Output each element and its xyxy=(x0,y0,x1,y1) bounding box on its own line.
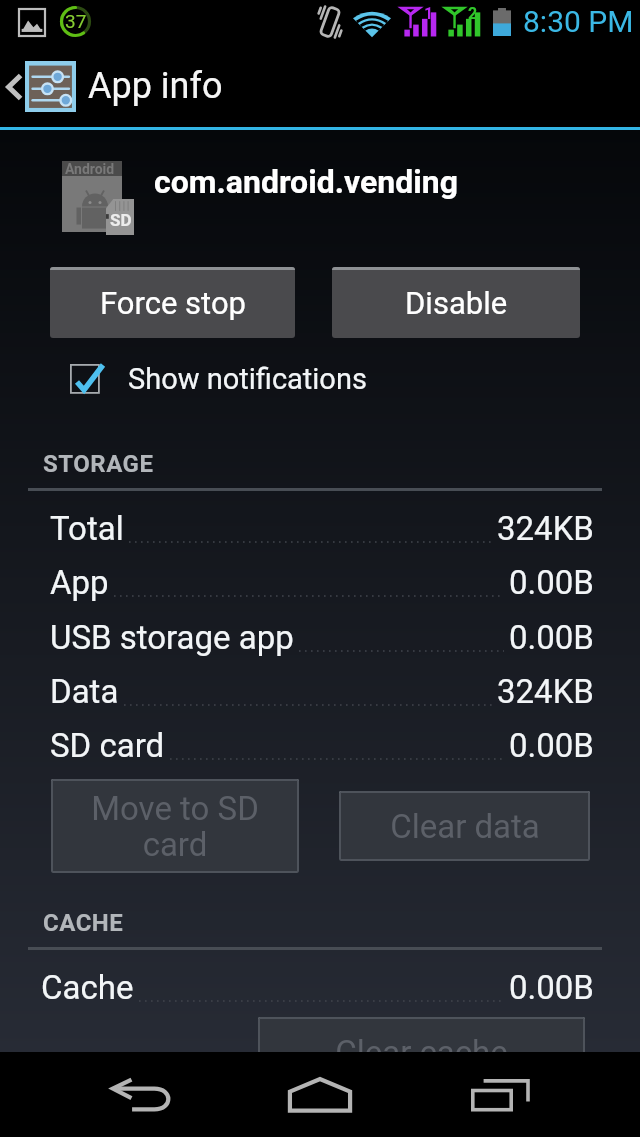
button[interactable]: Force stop xyxy=(50,267,295,338)
button[interactable]: Disable xyxy=(332,267,580,338)
button[interactable]: USB storage app xyxy=(0,610,640,664)
staticText: Show notifications xyxy=(128,362,367,396)
button[interactable]: Total xyxy=(0,501,640,555)
button[interactable]: Clear cache xyxy=(258,1017,585,1087)
staticText: 8:30 PM xyxy=(523,4,634,39)
staticText: SD xyxy=(110,210,132,230)
staticText: 0.00B xyxy=(509,726,594,765)
staticText: Android xyxy=(65,161,115,177)
staticText: CACHE xyxy=(43,909,124,937)
staticText: 0.00B xyxy=(509,618,594,657)
staticText: SD card xyxy=(50,726,165,765)
staticText: 2 xyxy=(468,4,478,23)
button[interactable]: SD card xyxy=(0,718,640,772)
staticText: Clear data xyxy=(390,807,540,846)
staticText: App xyxy=(50,563,109,602)
staticText: 0.00B xyxy=(509,563,594,602)
staticText: Move to SD card xyxy=(91,789,259,864)
staticText: 324KB xyxy=(497,509,594,548)
staticText: USB storage app xyxy=(50,618,294,657)
staticText: 0.00B xyxy=(509,968,594,1007)
button[interactable]: Clear data xyxy=(339,791,590,861)
staticText: Data xyxy=(50,672,119,711)
staticText: 1 xyxy=(424,4,434,23)
button[interactable]: Data xyxy=(0,664,640,718)
button[interactable]: Navigate up xyxy=(0,44,640,130)
staticText: App info xyxy=(88,65,223,107)
button[interactable]: Recent apps xyxy=(430,1052,570,1137)
staticText: Total xyxy=(50,509,124,548)
button[interactable]: Show notifications xyxy=(70,358,367,400)
button[interactable]: Move to SD card xyxy=(51,779,299,873)
staticText: Cache xyxy=(41,968,134,1007)
staticText: 37 xyxy=(65,10,87,32)
staticText: Clear cache xyxy=(335,1033,508,1072)
button[interactable]: Back xyxy=(70,1052,215,1137)
staticText: 324KB xyxy=(497,672,594,711)
staticText: Force stop xyxy=(100,285,246,321)
staticText: STORAGE xyxy=(43,450,154,478)
staticText: Disable xyxy=(405,285,508,321)
staticText: com.android.vending xyxy=(154,163,458,201)
button[interactable]: Home xyxy=(250,1052,390,1137)
button[interactable]: App xyxy=(0,555,640,609)
button[interactable]: Cache xyxy=(0,960,640,1014)
